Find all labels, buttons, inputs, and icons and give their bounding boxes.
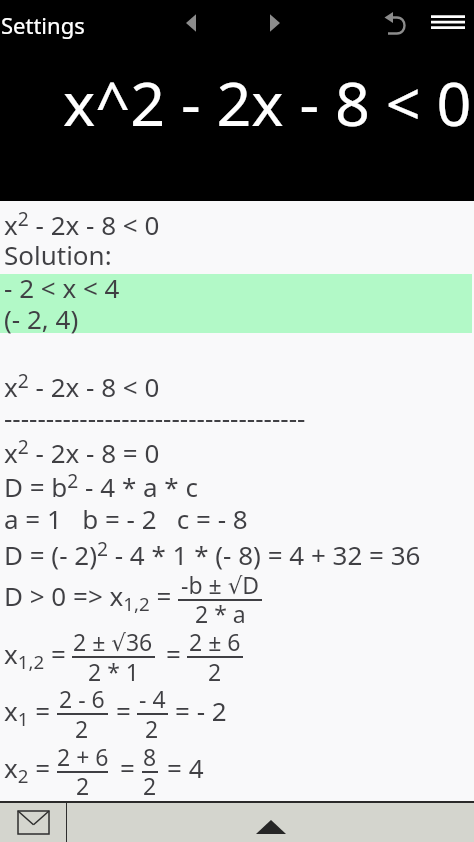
button[interactable]: Mail [0,802,66,842]
staticText: = [166,636,181,671]
staticText: x1 = [4,693,51,732]
staticText: a = 1 b = - 2 c = - 8 [4,501,248,536]
staticText: 2 [208,656,222,687]
staticText: 2 * a [195,598,246,629]
staticText: (- 2, 4) [4,301,79,336]
staticText: 2 * 1 [88,656,139,687]
staticText: = [120,750,135,785]
staticText: 2 [143,770,157,801]
staticText: 2 + 6 [57,741,109,772]
staticText: - 4 [139,683,166,714]
staticText: = - 2 [175,693,227,728]
staticText: 2 ± √36 [73,626,153,657]
staticText: -b ± √D [181,569,260,600]
staticText: x^2 - 2x - 8 < 0 [63,61,472,144]
staticText: x1,2 = [4,636,66,675]
button[interactable]: Next [265,8,289,32]
staticText: Solution: [4,237,112,272]
button[interactable]: Undo [382,8,412,38]
button[interactable]: Menu [427,8,469,36]
staticText: D > 0 => x1,2 = [4,578,172,617]
staticText: D = b2 - 4 * a * c [4,467,198,505]
staticText: x2 - 2x - 8 < 0 [4,367,160,405]
staticText: 2 ± 6 [189,626,241,657]
staticText: x2 - 2x - 8 = 0 [4,433,160,471]
button[interactable]: Settings [1,10,85,40]
staticText: D = (- 2)2 - 4 * 1 * (- 8) = 4 + 32 = 36 [4,535,421,573]
staticText: ------------------------------------ [4,400,306,435]
staticText: = 4 [167,750,204,785]
staticText: x2 - 2x - 8 < 0 [4,205,160,243]
staticText: x2 = [4,750,51,789]
staticText: = [116,693,131,728]
staticText: Settings [1,10,85,40]
staticText: 8 [143,741,157,772]
button[interactable]: Previous [182,8,206,32]
button[interactable]: Collapse [67,802,474,842]
staticText: 2 - 6 [59,683,105,714]
staticText: 2 [75,713,89,744]
staticText: - 2 < x < 4 [4,270,120,305]
staticText: 2 [145,713,159,744]
staticText: 2 [76,770,90,801]
